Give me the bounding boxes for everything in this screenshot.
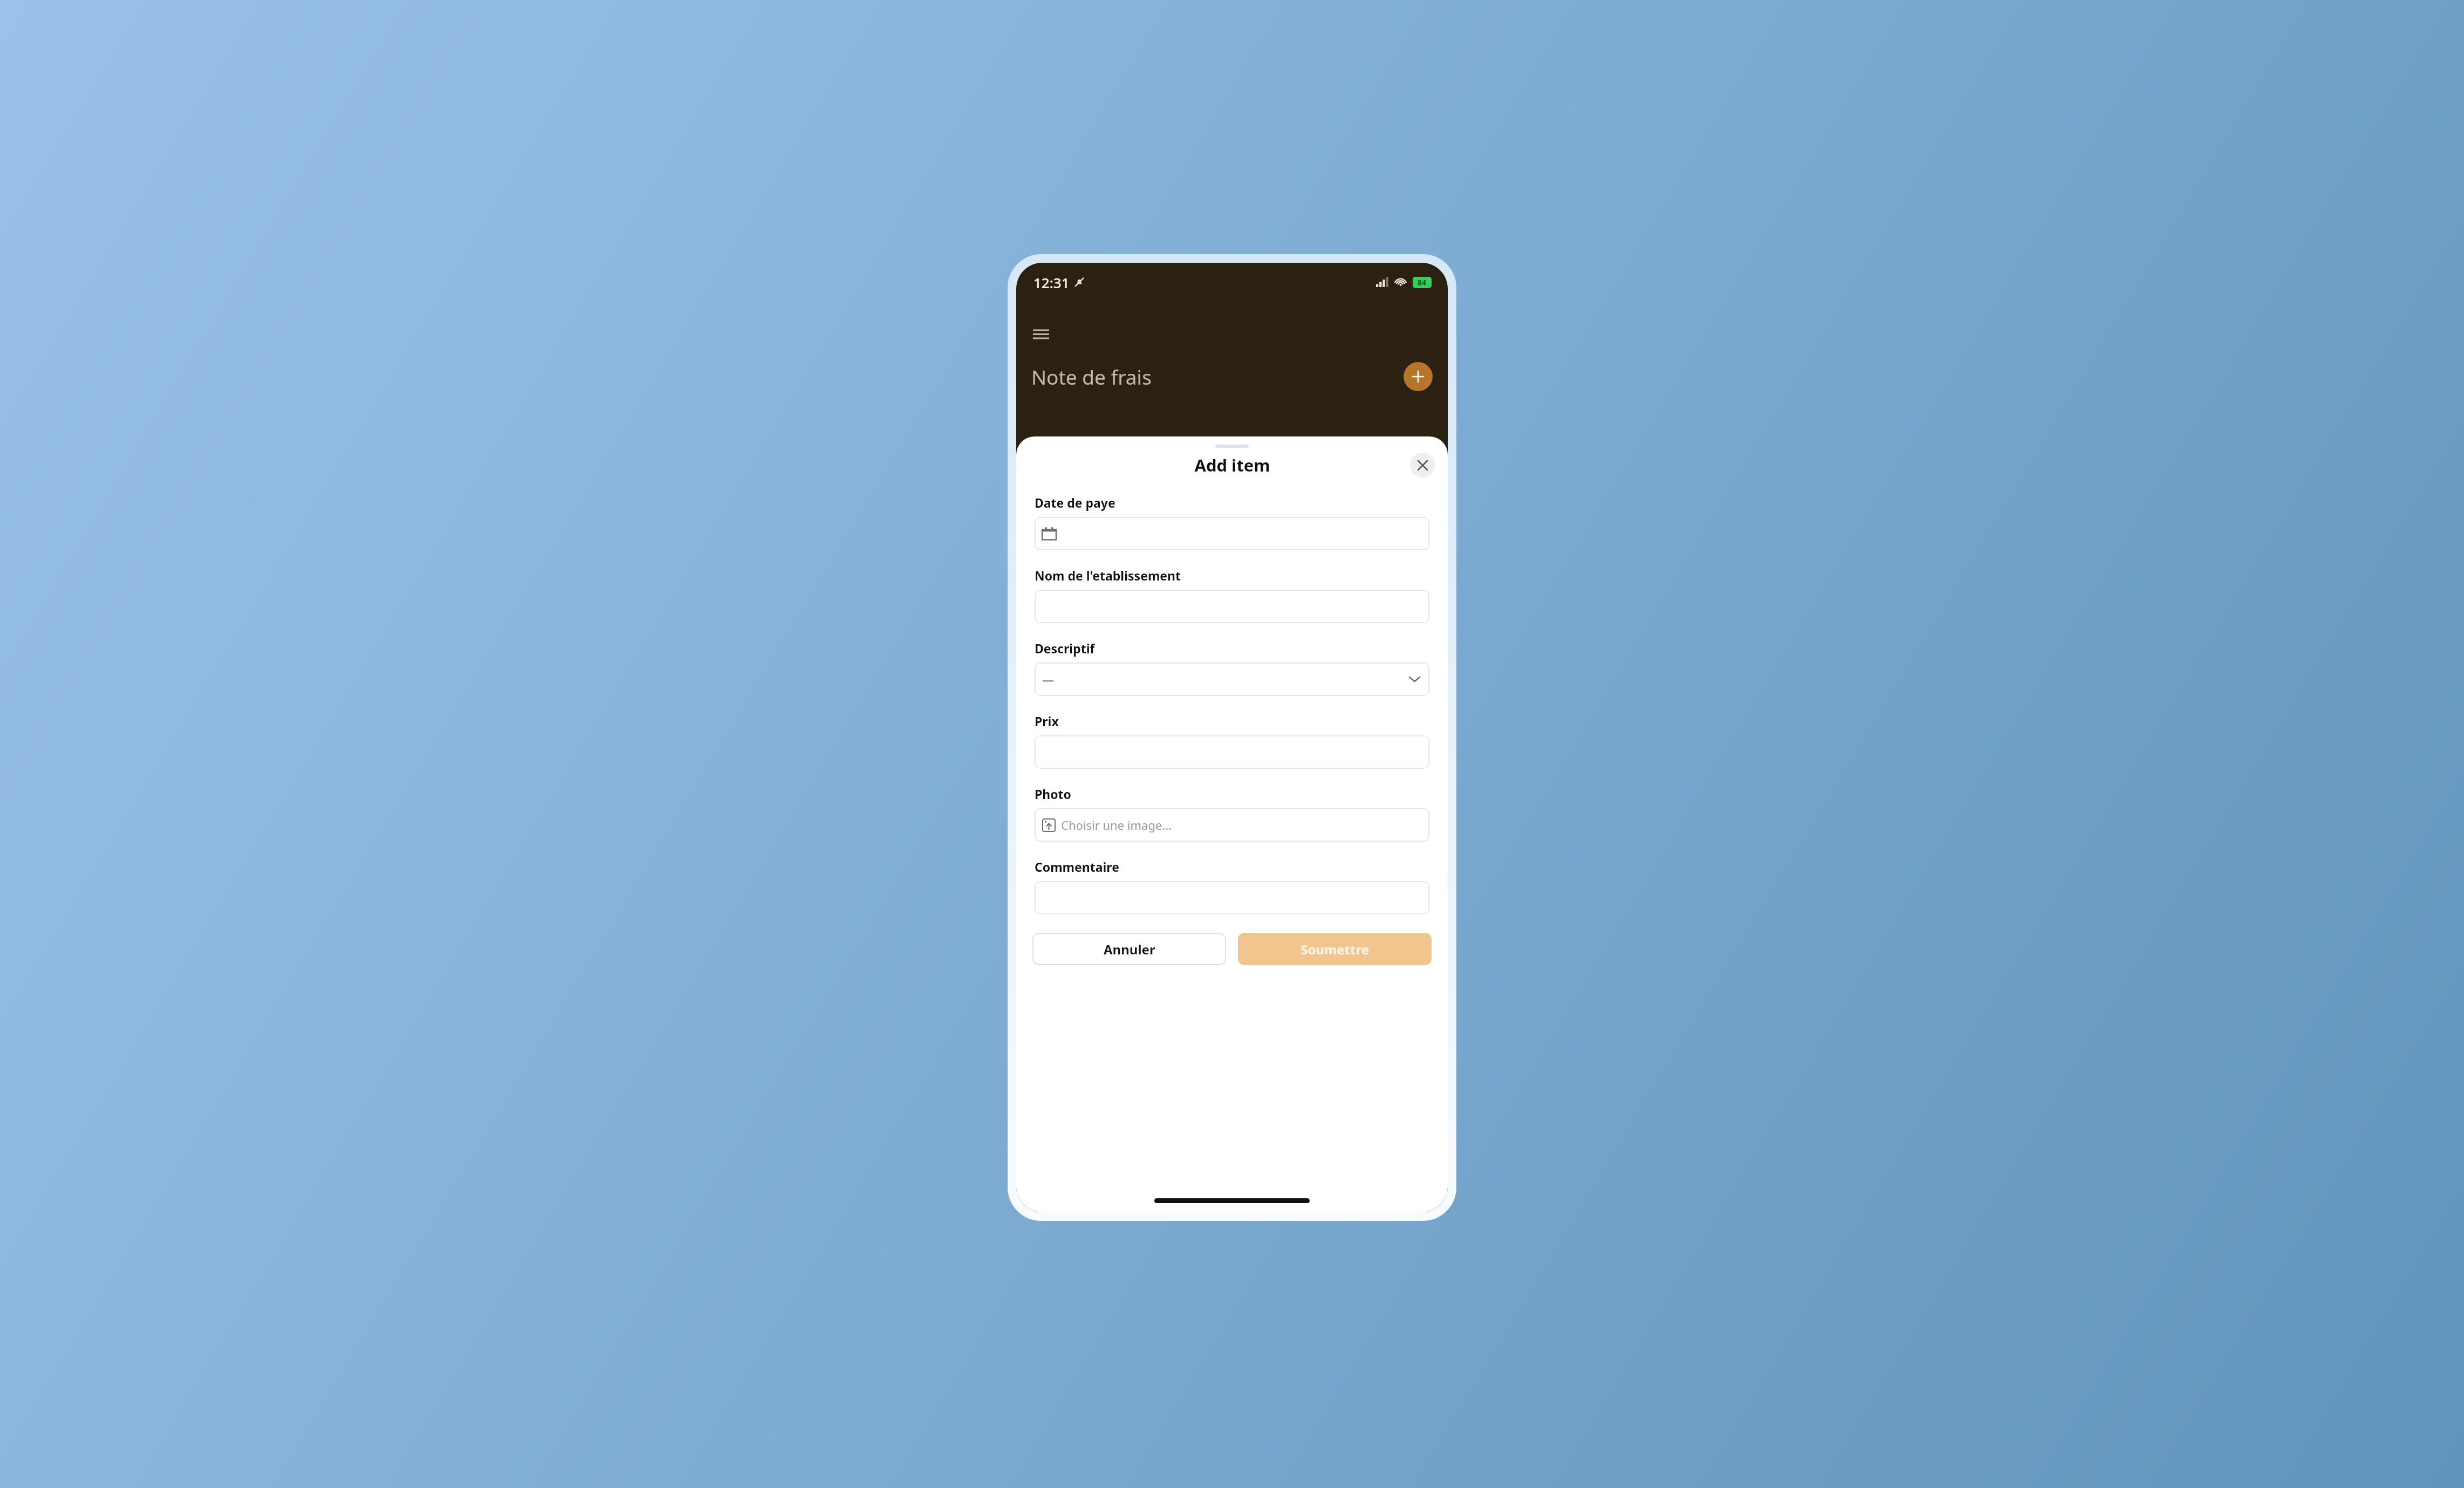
- staticText: —: [1042, 671, 1055, 687]
- button[interactable]: Soumettre: [1238, 933, 1432, 965]
- staticText: Descriptif: [1035, 640, 1095, 657]
- button[interactable]: [1035, 517, 1429, 550]
- staticText: Commentaire: [1035, 858, 1119, 875]
- button[interactable]: Annuler: [1032, 933, 1226, 965]
- button[interactable]: Menu: [1027, 320, 1055, 348]
- button[interactable]: Add: [1404, 362, 1433, 391]
- staticText: 84: [1418, 277, 1427, 288]
- button[interactable]: [1035, 590, 1429, 623]
- staticText: Soumettre: [1301, 940, 1369, 958]
- staticText: Nom de l'etablissement: [1035, 567, 1181, 584]
- staticText: Choisir une image...: [1061, 817, 1172, 833]
- staticText: Prix: [1035, 713, 1059, 729]
- staticText: Photo: [1035, 786, 1071, 802]
- button[interactable]: [1035, 735, 1429, 769]
- staticText: 12:31: [1033, 273, 1070, 292]
- button[interactable]: —: [1035, 663, 1429, 696]
- staticText: Note de frais: [1031, 363, 1152, 390]
- button[interactable]: Choisir une image...: [1035, 808, 1429, 842]
- staticText: Date de paye: [1035, 494, 1115, 511]
- button[interactable]: Close: [1410, 453, 1435, 477]
- button[interactable]: [1035, 881, 1429, 914]
- staticText: Add item: [1194, 454, 1270, 476]
- staticText: Annuler: [1104, 940, 1155, 958]
